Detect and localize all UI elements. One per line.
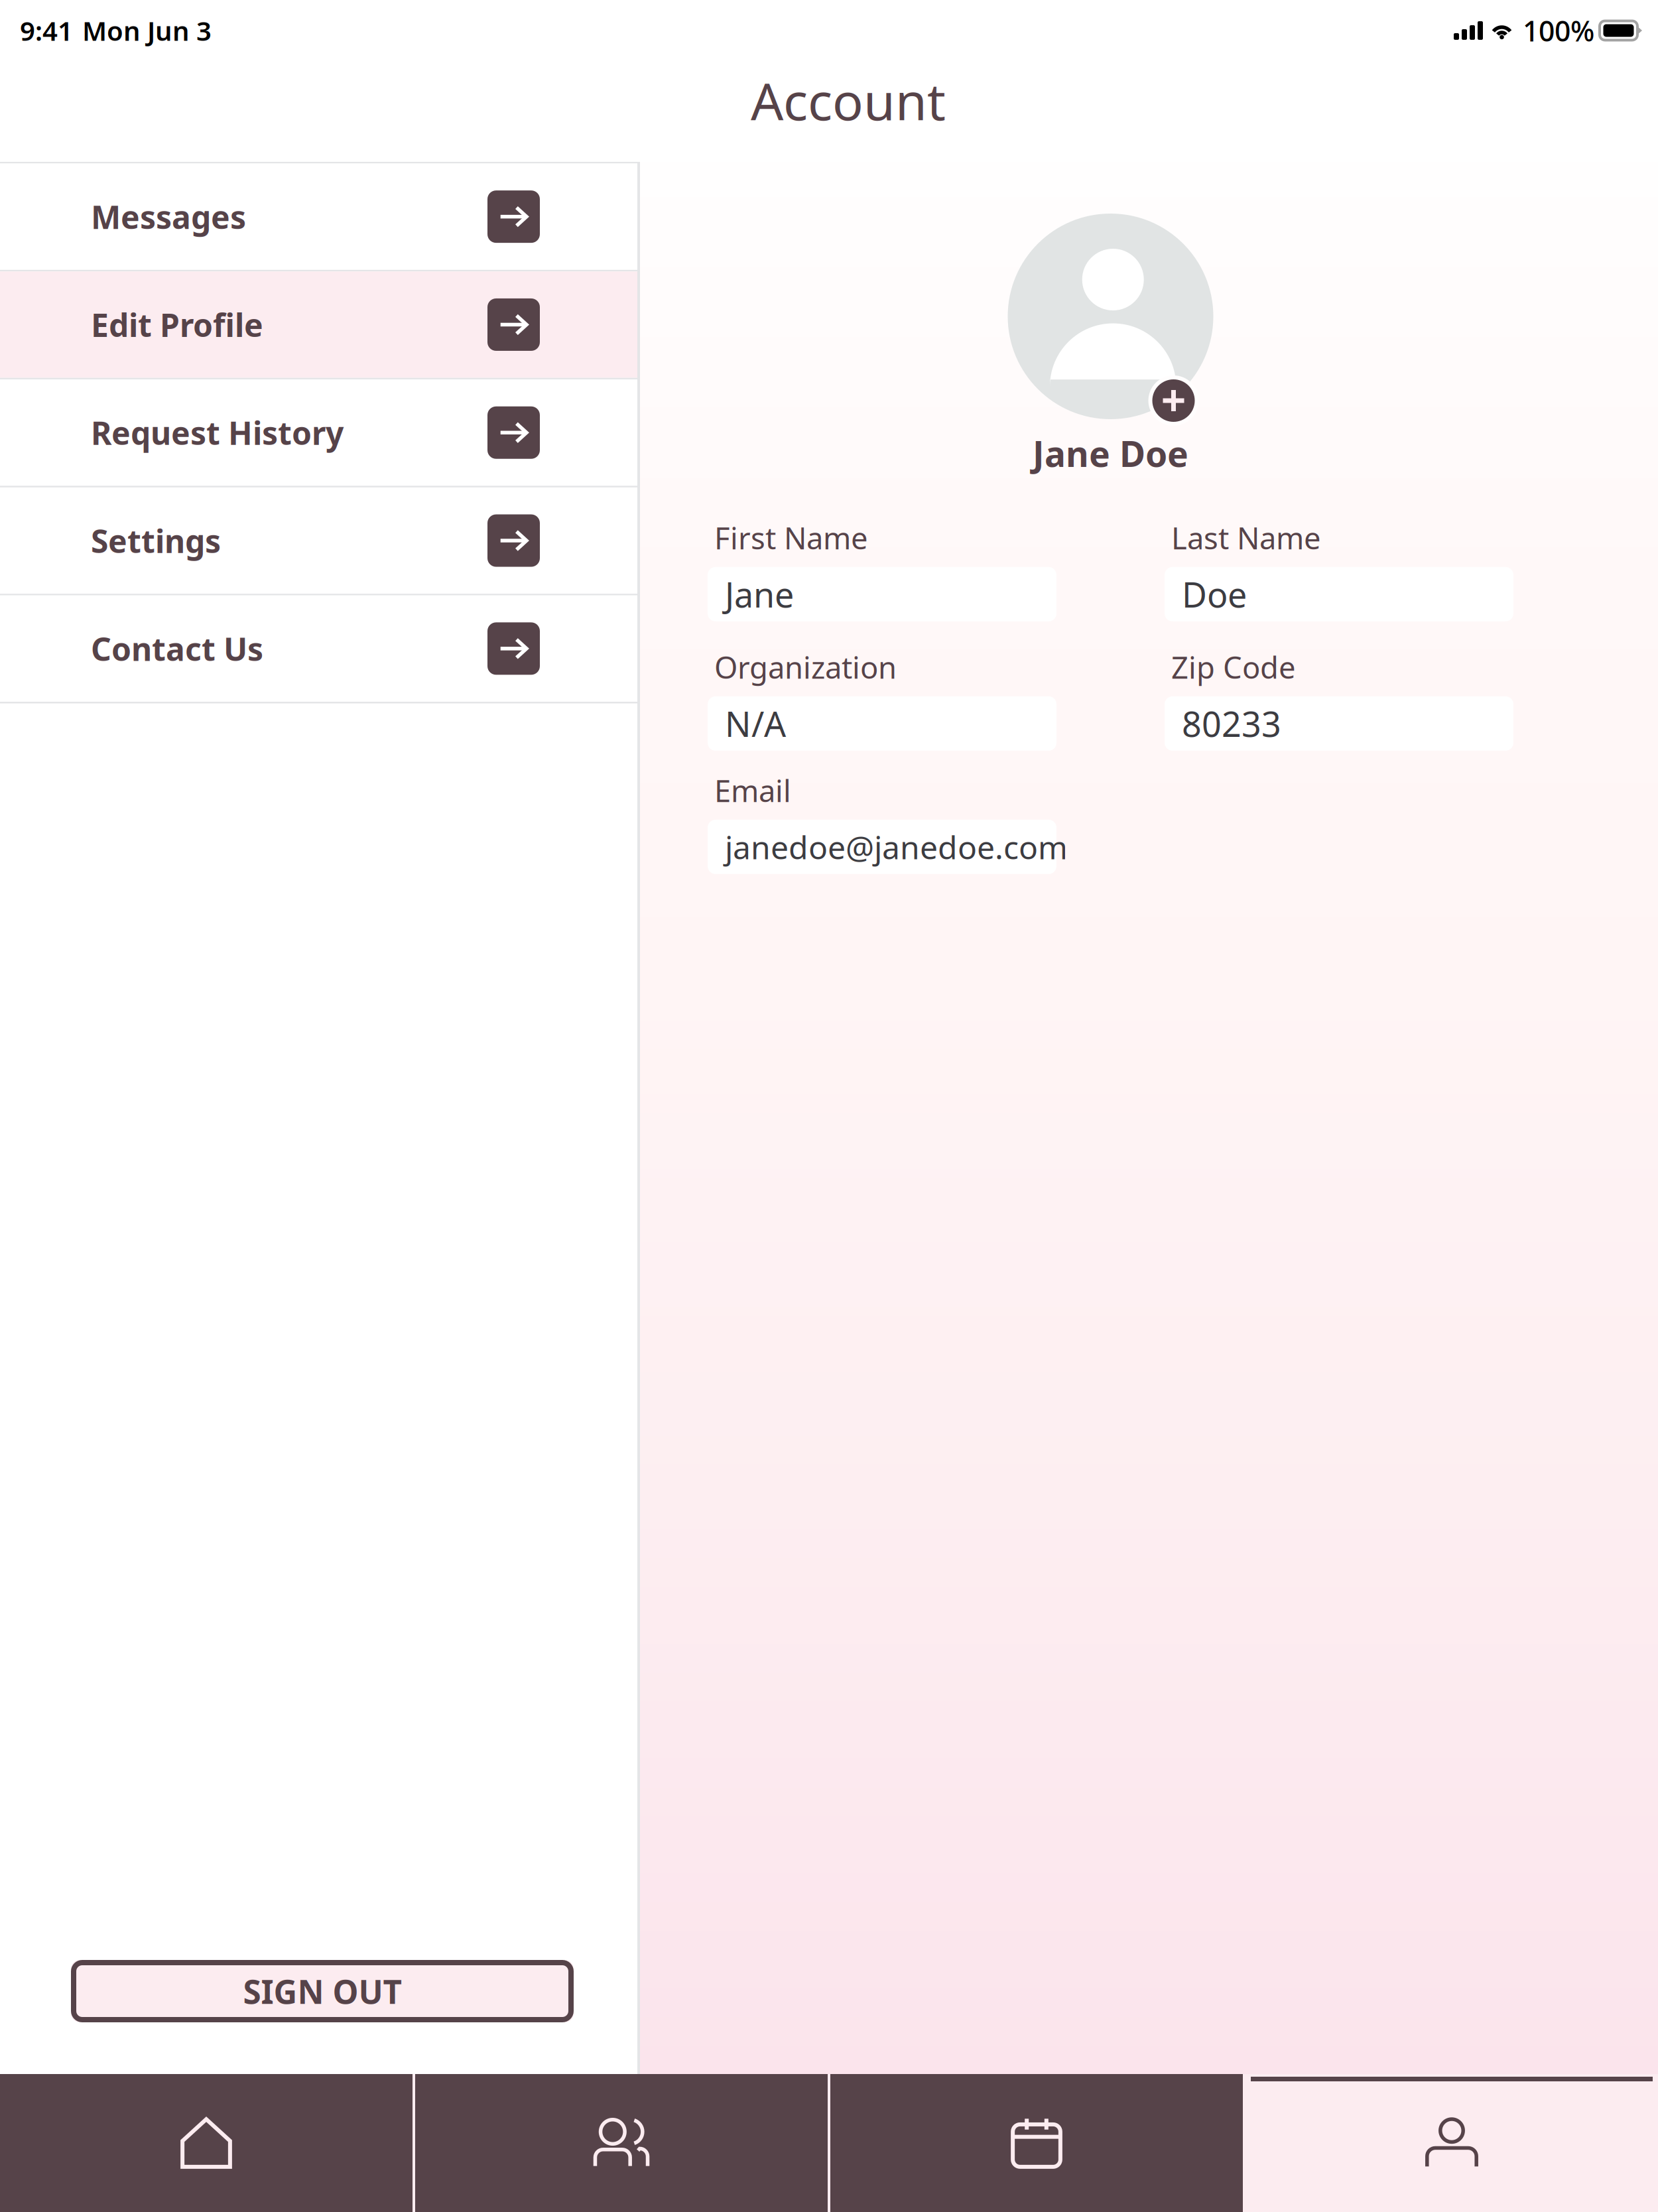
button[interactable]: Edit Profile bbox=[0, 271, 637, 378]
staticText: Zip Code bbox=[1171, 647, 1296, 687]
staticText: 100% bbox=[1523, 12, 1594, 49]
staticText: Jane bbox=[725, 571, 794, 617]
staticText: 80233 bbox=[1182, 701, 1281, 746]
button[interactable]: Contact Us bbox=[0, 595, 637, 702]
staticText: janedoe@janedoe.com bbox=[725, 826, 1068, 868]
staticText: Organization bbox=[714, 647, 897, 687]
button[interactable]: Home bbox=[0, 2074, 413, 2212]
staticText: First Name bbox=[714, 518, 868, 558]
button[interactable]: Settings bbox=[0, 487, 637, 594]
staticText: Contact Us bbox=[91, 627, 263, 670]
staticText: Email bbox=[714, 770, 791, 810]
staticText: Settings bbox=[91, 519, 221, 562]
staticText: Jane Doe bbox=[1033, 430, 1188, 477]
button[interactable]: Calendar bbox=[830, 2074, 1243, 2212]
button[interactable]: Clients bbox=[415, 2074, 828, 2212]
button[interactable]: SIGN OUT bbox=[71, 1960, 574, 2022]
staticText: Edit Profile bbox=[91, 304, 263, 346]
button[interactable]: Messages bbox=[0, 163, 637, 270]
staticText: SIGN OUT bbox=[243, 1969, 402, 2013]
staticText: Last Name bbox=[1171, 518, 1321, 558]
staticText: Request History bbox=[91, 411, 344, 454]
staticText: Account bbox=[751, 66, 946, 134]
staticText: N/A bbox=[725, 701, 786, 746]
staticText: Mon Jun 3 bbox=[82, 13, 212, 48]
staticText: Doe bbox=[1182, 571, 1247, 617]
staticText: Messages bbox=[91, 196, 246, 238]
button[interactable]: Account bbox=[1245, 2074, 1658, 2212]
button[interactable]: Request History bbox=[0, 379, 637, 486]
staticText: 9:41 bbox=[20, 13, 73, 48]
